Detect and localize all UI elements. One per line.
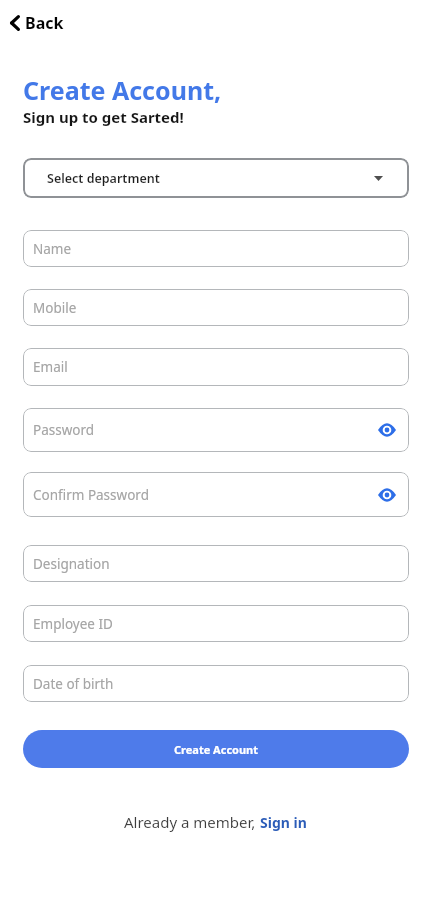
button[interactable]: Employee ID <box>23 605 409 642</box>
button[interactable]: Create Account <box>23 730 409 768</box>
staticText: Back <box>25 12 64 34</box>
staticText: Date of birth <box>33 675 114 693</box>
staticText: Designation <box>33 555 110 573</box>
button[interactable]: Confirm Password <box>23 472 409 517</box>
staticText: Confirm Password <box>33 486 149 504</box>
button[interactable]: Select department <box>23 158 409 198</box>
staticText: Already a member, <box>124 812 260 832</box>
staticText: Mobile <box>33 299 77 317</box>
staticText: Create Account <box>174 742 259 757</box>
button[interactable]: Back <box>8 8 66 38</box>
staticText: Create Account, <box>23 73 222 107</box>
staticText: Email <box>33 358 68 376</box>
button[interactable]: Mobile <box>23 289 409 326</box>
button[interactable]: Date of birth <box>23 665 409 702</box>
button[interactable]: Password <box>23 408 409 452</box>
button[interactable]: Email <box>23 348 409 386</box>
staticText: Select department <box>47 170 160 187</box>
staticText: Name <box>33 240 72 258</box>
staticText: Sign up to get Sarted! <box>23 107 184 127</box>
button[interactable]: Name <box>23 230 409 267</box>
staticText: Password <box>33 421 95 439</box>
button[interactable]: Designation <box>23 545 409 582</box>
staticText: Sign in <box>260 813 307 832</box>
staticText: Employee ID <box>33 615 113 633</box>
button[interactable]: Sign in <box>260 813 307 832</box>
